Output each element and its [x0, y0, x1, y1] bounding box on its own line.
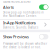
button[interactable]: In-App Notifications	[0, 19, 50, 30]
staticText: Previews will be shown whether the devic…	[3, 42, 47, 49]
staticText: Banners, Sounds, Badges	[3, 26, 38, 29]
staticText: GAME NOTIFICATIONS	[3, 0, 30, 3]
button[interactable]: Show Previews	[0, 34, 50, 40]
button[interactable]: Alerts	[0, 4, 50, 10]
staticText: Show pop-up notifications in the Notific…	[3, 11, 44, 18]
staticText: Alerts	[3, 4, 14, 10]
staticText: In-App Notifications	[3, 20, 36, 25]
staticText: Show Previews	[3, 34, 29, 39]
